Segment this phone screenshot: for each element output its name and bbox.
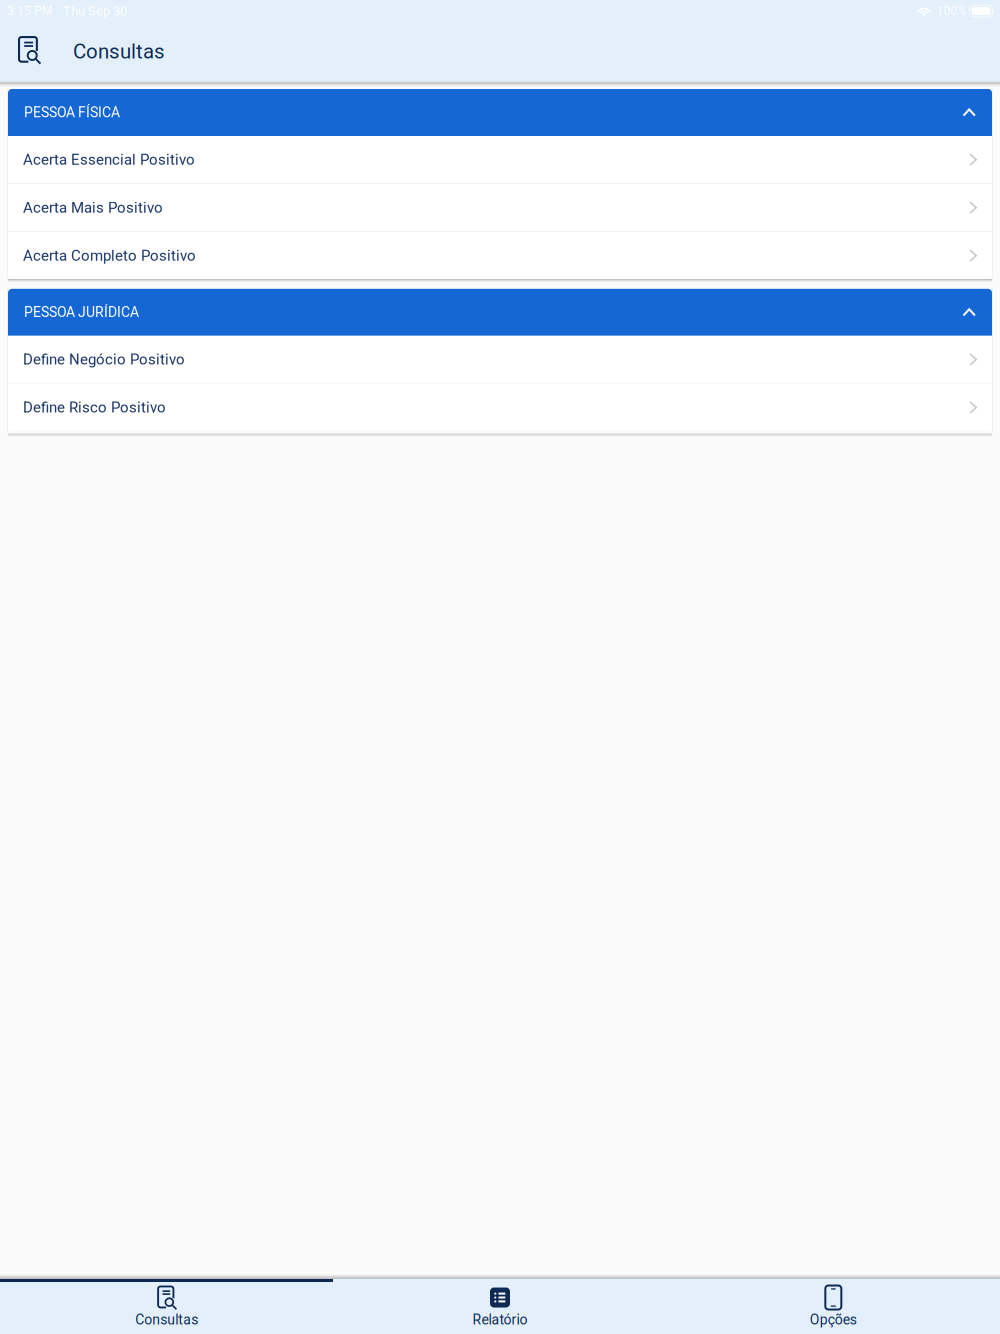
- staticText: 3:15 PM: [7, 4, 52, 18]
- button[interactable]: PESSOA FÍSICA: [8, 89, 992, 136]
- button[interactable]: Define Risco Positivo: [8, 384, 992, 431]
- button[interactable]: Acerta Essencial Positivo: [8, 136, 992, 183]
- button[interactable]: Acerta Mais Positivo: [8, 184, 992, 231]
- staticText: Consultas: [73, 39, 165, 63]
- staticText: Consultas: [135, 1311, 198, 1328]
- staticText: Acerta Completo Positivo: [23, 247, 196, 264]
- staticText: Relatório: [472, 1311, 527, 1328]
- staticText: 100%: [936, 4, 966, 18]
- button[interactable]: PESSOA JURÍDICA: [8, 289, 992, 336]
- staticText: PESSOA FÍSICA: [24, 104, 120, 121]
- staticText: Define Negócio Positivo: [23, 350, 185, 368]
- button[interactable]: Relatório: [333, 1280, 667, 1334]
- button[interactable]: Opções: [667, 1280, 1000, 1334]
- button[interactable]: Consultas: [0, 22, 73, 81]
- staticText: Opções: [810, 1311, 857, 1328]
- button[interactable]: Acerta Completo Positivo: [8, 232, 992, 279]
- button[interactable]: Define Negócio Positivo: [8, 336, 992, 383]
- staticText: Acerta Mais Positivo: [23, 199, 163, 216]
- staticText: PESSOA JURÍDICA: [24, 304, 139, 320]
- staticText: Thu Sep 30: [63, 3, 127, 19]
- button[interactable]: Consultas: [0, 1280, 333, 1334]
- staticText: Acerta Essencial Positivo: [23, 151, 195, 168]
- staticText: Define Risco Positivo: [23, 398, 166, 416]
